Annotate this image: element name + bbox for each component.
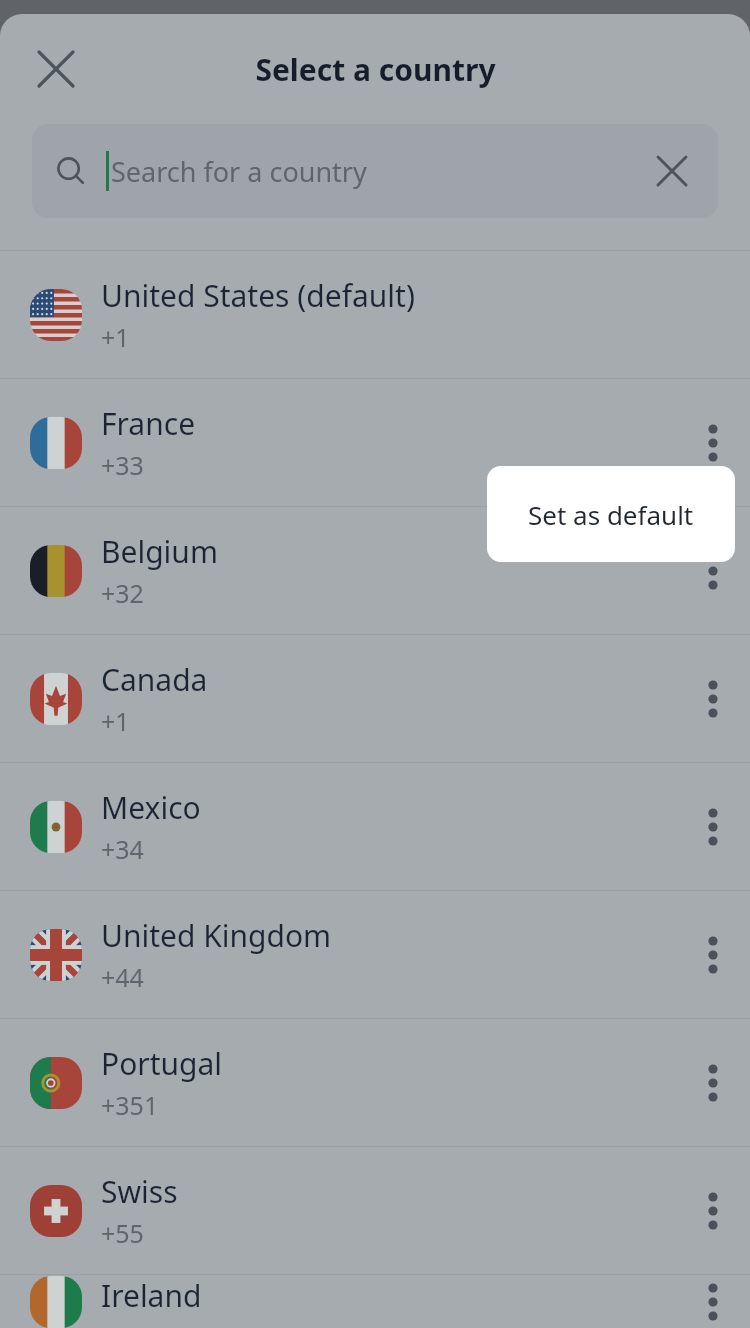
- button[interactable]: Portugal: [0, 1019, 750, 1146]
- button[interactable]: Clear search: [646, 145, 698, 197]
- button[interactable]: More options: [676, 507, 750, 634]
- staticText: Set as default: [528, 497, 694, 532]
- button[interactable]: Close: [26, 39, 86, 99]
- button[interactable]: More options: [676, 379, 750, 506]
- button[interactable]: Swiss: [0, 1147, 750, 1274]
- staticText: Swiss: [101, 1171, 178, 1212]
- staticText: Ireland: [101, 1275, 202, 1316]
- button[interactable]: More options: [676, 635, 750, 762]
- button[interactable]: More options: [676, 1275, 750, 1328]
- button[interactable]: United States (default): [0, 251, 750, 378]
- button[interactable]: More options: [676, 1019, 750, 1146]
- button[interactable]: More options: [676, 1147, 750, 1274]
- button[interactable]: United Kingdom: [0, 891, 750, 1018]
- staticText: Mexico: [101, 787, 201, 828]
- staticText: United States (default): [101, 275, 415, 316]
- staticText: +33: [101, 448, 144, 482]
- button[interactable]: More options: [676, 891, 750, 1018]
- staticText: Search for a country: [111, 153, 367, 190]
- button[interactable]: France: [0, 379, 750, 506]
- staticText: +44: [101, 960, 144, 994]
- staticText: France: [101, 403, 196, 444]
- staticText: +351: [101, 1088, 159, 1122]
- staticText: +1: [101, 320, 130, 354]
- staticText: Portugal: [101, 1043, 223, 1084]
- staticText: +32: [101, 576, 144, 610]
- staticText: United Kingdom: [101, 915, 332, 956]
- button[interactable]: Set as default: [487, 466, 735, 562]
- staticText: +34: [101, 832, 144, 866]
- staticText: Canada: [101, 659, 208, 700]
- staticText: Belgium: [101, 531, 218, 572]
- staticText: +1: [101, 704, 130, 738]
- button[interactable]: Ireland: [0, 1275, 750, 1328]
- button[interactable]: Canada: [0, 635, 750, 762]
- button[interactable]: More options: [676, 763, 750, 890]
- staticText: +55: [101, 1216, 144, 1250]
- button[interactable]: Mexico: [0, 763, 750, 890]
- button[interactable]: Belgium: [0, 507, 750, 634]
- button[interactable]: Search for a country: [32, 124, 718, 218]
- staticText: Select a country: [255, 49, 496, 90]
